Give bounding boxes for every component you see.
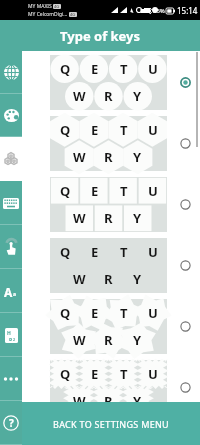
staticText: 4G [70, 12, 76, 17]
button[interactable]: Q [22, 174, 200, 235]
staticText: Y [133, 209, 142, 227]
staticText: R [104, 270, 113, 288]
other: Select [180, 138, 191, 149]
staticText: U [148, 365, 158, 383]
other: Select [180, 260, 191, 271]
staticText: Y [133, 331, 142, 349]
staticText: Type of keys [60, 27, 141, 45]
other: Select [180, 382, 191, 393]
staticText: W [73, 331, 86, 349]
staticText: R [9, 337, 13, 341]
staticText: Y [133, 392, 142, 410]
staticText: MY MAXIS [28, 3, 52, 10]
staticText: W [73, 270, 86, 288]
staticText: BACK TO SETTINGS MENU [53, 418, 169, 430]
staticText: Q [60, 182, 71, 200]
staticText: U [148, 60, 158, 78]
staticText: 15:14 [177, 5, 198, 16]
staticText: R [104, 331, 113, 349]
staticText: W [73, 392, 86, 410]
button[interactable]: Q [22, 235, 200, 296]
staticText: H [7, 330, 11, 337]
staticText: Q [60, 121, 71, 139]
staticText: Y [133, 148, 142, 166]
button[interactable]: Language [0, 51, 22, 94]
button[interactable]: Q [22, 52, 200, 113]
staticText: W [73, 148, 86, 166]
staticText: E [91, 243, 99, 261]
button[interactable]: Keyboard layout [0, 181, 22, 225]
staticText: E [91, 182, 99, 200]
staticText: U [148, 243, 158, 261]
staticText: E [91, 304, 99, 322]
staticText: U [148, 182, 158, 200]
staticText: ? [9, 416, 14, 430]
staticText: A [4, 284, 13, 298]
button[interactable]: Text size [0, 269, 22, 313]
button[interactable]: Help [0, 401, 22, 445]
staticText: Q [60, 304, 71, 322]
button[interactable]: Q [22, 357, 200, 418]
button[interactable]: Q [22, 296, 200, 357]
button[interactable]: Type of keys [0, 137, 22, 181]
staticText: R [104, 87, 113, 105]
other: Select [180, 321, 191, 332]
staticText: 2 [13, 337, 16, 341]
staticText: Y [133, 270, 142, 288]
staticText: Y [133, 87, 142, 105]
staticText: Q [60, 243, 71, 261]
staticText: T [120, 121, 128, 139]
staticText: T [120, 304, 128, 322]
button[interactable]: Q [22, 113, 200, 174]
button[interactable]: Gestures [0, 225, 22, 269]
staticText: U [148, 121, 158, 139]
staticText: W [73, 87, 86, 105]
staticText: Q [60, 60, 71, 78]
staticText: E [91, 121, 99, 139]
staticText: E [91, 365, 99, 383]
staticText: R [104, 209, 113, 227]
staticText: 4G [54, 4, 60, 9]
staticText: W [73, 209, 86, 227]
staticText: MY CelcomDigi... [28, 11, 68, 18]
button[interactable]: Theme [0, 94, 22, 137]
button[interactable]: Dictionary [0, 313, 22, 357]
staticText: U [148, 304, 158, 322]
other: Select [180, 199, 191, 210]
staticText: R [104, 148, 113, 166]
staticText: T [120, 182, 128, 200]
staticText: T [120, 60, 128, 78]
button[interactable]: BACK TO SETTINGS MENU [22, 402, 200, 445]
staticText: R [104, 392, 113, 410]
staticText: T [120, 243, 128, 261]
staticText: a [13, 291, 16, 298]
button[interactable]: More options [0, 357, 22, 401]
staticText: Q [60, 365, 71, 383]
staticText: 85% [153, 7, 165, 15]
staticText: E [91, 60, 99, 78]
staticText: T [120, 365, 128, 383]
other: Select [180, 77, 191, 88]
